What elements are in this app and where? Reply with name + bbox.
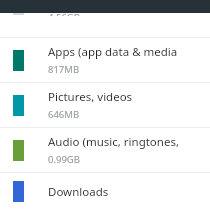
button[interactable]: Pictures, videos <box>0 83 210 127</box>
button[interactable]: Downloads <box>0 173 210 210</box>
staticText: Apps (app data & media conten.. <box>48 44 202 60</box>
button[interactable]: Storage <box>0 13 210 37</box>
staticText: 817MB <box>48 63 80 76</box>
button[interactable]: Audio (music, ringtones, podca.. <box>0 128 210 172</box>
staticText: Downloads <box>48 184 109 200</box>
staticText: 646MB <box>48 108 80 121</box>
staticText: 0.99GB <box>48 153 80 166</box>
button[interactable]: Apps (app data & media conten.. <box>0 38 210 82</box>
staticText: Pictures, videos <box>48 89 133 105</box>
staticText: 4.56GB <box>48 13 80 16</box>
staticText: Audio (music, ringtones, podca.. <box>48 134 202 150</box>
